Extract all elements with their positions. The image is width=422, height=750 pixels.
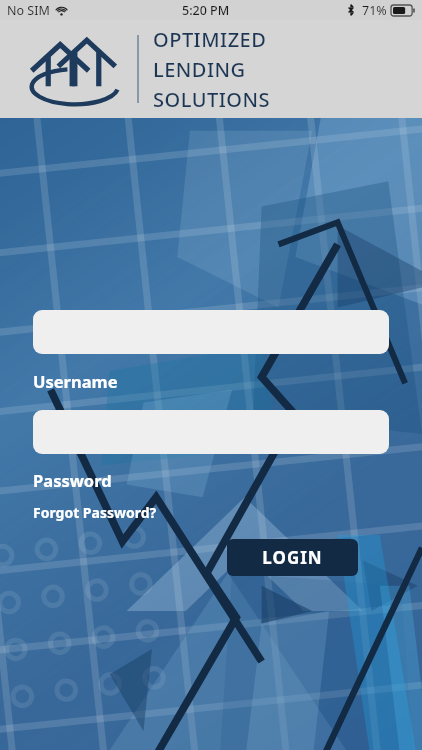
staticText: 5:20 PM (182, 2, 230, 19)
staticText: 71% (362, 2, 387, 19)
button[interactable]: Forgot Password? (33, 503, 157, 522)
staticText: No SIM (7, 2, 50, 19)
staticText: LENDING (153, 56, 246, 83)
button[interactable]: LOGIN (227, 539, 358, 576)
staticText: Username (33, 370, 118, 392)
staticText: SOLUTIONS (153, 86, 270, 113)
staticText: Forgot Password? (33, 503, 157, 522)
button[interactable] (33, 410, 389, 454)
staticText: OPTIMIZED (153, 26, 267, 53)
staticText: Password (33, 469, 112, 491)
button[interactable] (33, 310, 389, 354)
staticText: LOGIN (262, 546, 323, 569)
